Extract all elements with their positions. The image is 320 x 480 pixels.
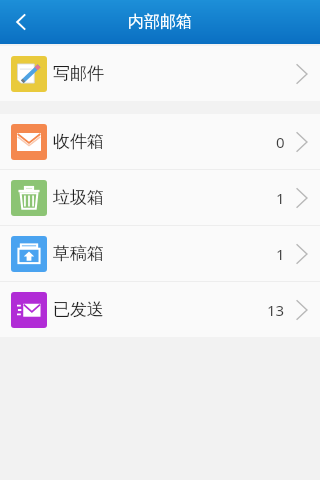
button[interactable]: 垃圾箱 xyxy=(0,170,320,225)
staticText: 0 xyxy=(276,132,285,152)
staticText: 收件箱 xyxy=(53,131,104,152)
button[interactable]: 收件箱 xyxy=(0,114,320,169)
staticText: 1 xyxy=(276,244,285,264)
staticText: 已发送 xyxy=(53,299,104,320)
button[interactable]: 已发送 xyxy=(0,282,320,337)
staticText: 垃圾箱 xyxy=(53,187,104,208)
button[interactable]: 草稿箱 xyxy=(0,226,320,281)
staticText: 1 xyxy=(276,188,285,208)
staticText: 写邮件 xyxy=(53,63,104,84)
button[interactable]: Back xyxy=(0,0,44,44)
staticText: 草稿箱 xyxy=(53,243,104,264)
staticText: 内部邮箱 xyxy=(128,12,192,32)
staticText: 13 xyxy=(267,300,285,320)
button[interactable]: 写邮件 xyxy=(0,46,320,101)
